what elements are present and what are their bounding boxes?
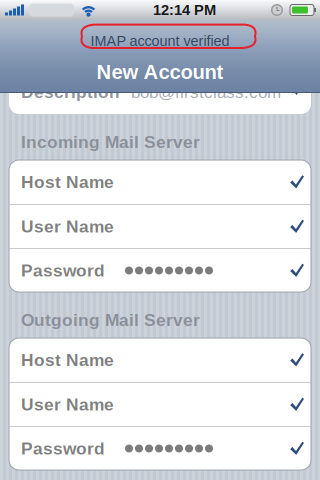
- staticText: 12:14 PM: [153, 2, 216, 18]
- button[interactable]: User Name: [9, 383, 311, 426]
- staticText: Host Name: [21, 350, 114, 370]
- staticText: Incoming Mail Server: [21, 132, 200, 152]
- staticText: New Account: [96, 61, 223, 83]
- button[interactable]: Password: [9, 427, 311, 470]
- button[interactable]: User Name: [9, 205, 311, 248]
- button[interactable]: Password: [9, 249, 311, 292]
- staticText: Description: [21, 82, 120, 102]
- staticText: Outgoing Mail Server: [21, 310, 200, 330]
- staticText: Host Name: [21, 172, 114, 192]
- button[interactable]: Host Name: [9, 338, 311, 382]
- staticText: Password: [21, 261, 105, 280]
- staticText: bob@firstclass.com: [131, 82, 281, 102]
- button[interactable]: Host Name: [9, 160, 311, 204]
- staticText: IMAP account verified: [90, 33, 229, 49]
- staticText: User Name: [21, 217, 114, 236]
- button[interactable]: Description: [9, 70, 311, 114]
- staticText: Password: [21, 439, 105, 458]
- staticText: User Name: [21, 395, 114, 414]
